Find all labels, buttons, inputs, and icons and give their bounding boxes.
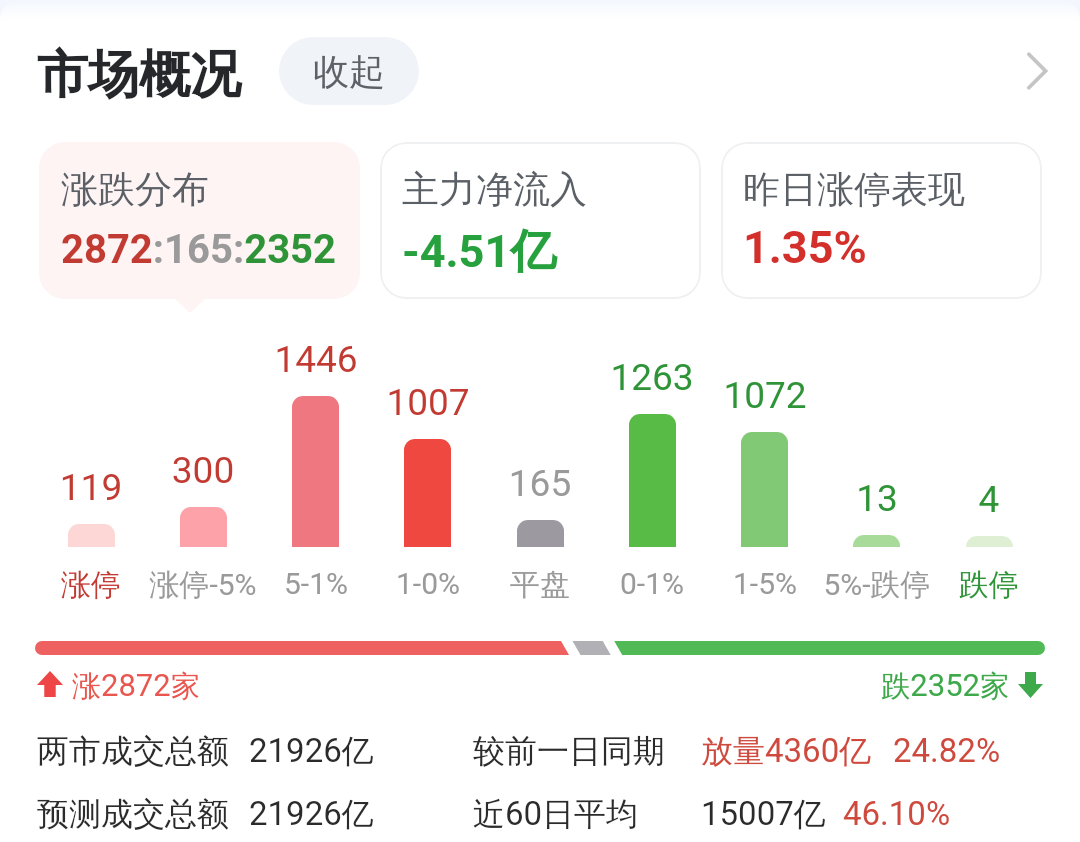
staticText: 15007亿	[701, 794, 826, 834]
staticText: 21926亿	[249, 731, 374, 771]
staticText: 21926亿	[249, 794, 374, 834]
button[interactable]: 涨跌分布	[39, 142, 360, 299]
staticText: 300	[133, 449, 273, 492]
staticText: 两市成交总额	[37, 731, 229, 771]
staticText: 13	[807, 477, 947, 520]
staticText: 平盘	[460, 566, 620, 604]
staticText: 涨停	[11, 566, 171, 604]
staticText: 涨2872家	[72, 667, 200, 704]
staticText: 1007	[358, 381, 498, 424]
staticText: 165	[470, 462, 610, 505]
button[interactable]: 展开	[990, 26, 1080, 116]
staticText: 昨日涨停表现	[743, 166, 965, 213]
staticText: 1072	[695, 374, 835, 417]
staticText: 1.35%	[743, 221, 867, 274]
staticText: 1-0%	[348, 566, 508, 601]
staticText: -4.51亿	[402, 223, 557, 281]
staticText: 预测成交总额	[37, 794, 229, 834]
staticText: 涨跌分布	[61, 166, 209, 213]
staticText: 1-5%	[685, 566, 845, 601]
staticText: 1263	[582, 356, 722, 399]
staticText: 市场概况	[37, 43, 241, 107]
staticText: 跌停	[909, 566, 1069, 604]
staticText: 收起	[313, 49, 385, 94]
staticText: 5-1%	[236, 566, 396, 601]
staticText: 46.10%	[843, 794, 951, 833]
staticText: 涨停-5%	[123, 566, 283, 604]
button[interactable]: 昨日涨停表现	[721, 142, 1042, 299]
staticText: 放量4360亿	[701, 731, 872, 771]
staticText: 4	[919, 478, 1059, 521]
staticText: 跌2352家	[742, 667, 1009, 704]
staticText: 较前一日同期	[473, 731, 665, 771]
staticText: 主力净流入	[402, 166, 587, 213]
button[interactable]: 收起	[279, 37, 419, 105]
staticText: 近60日平均	[473, 794, 639, 834]
staticText: 5%-跌停	[797, 566, 957, 604]
staticText: 0-1%	[572, 566, 732, 601]
staticText: 24.82%	[893, 731, 1001, 770]
button[interactable]: 主力净流入	[380, 142, 701, 299]
staticText: 1446	[246, 338, 386, 381]
staticText: 2872:165:2352	[61, 226, 336, 273]
staticText: 119	[21, 466, 161, 509]
